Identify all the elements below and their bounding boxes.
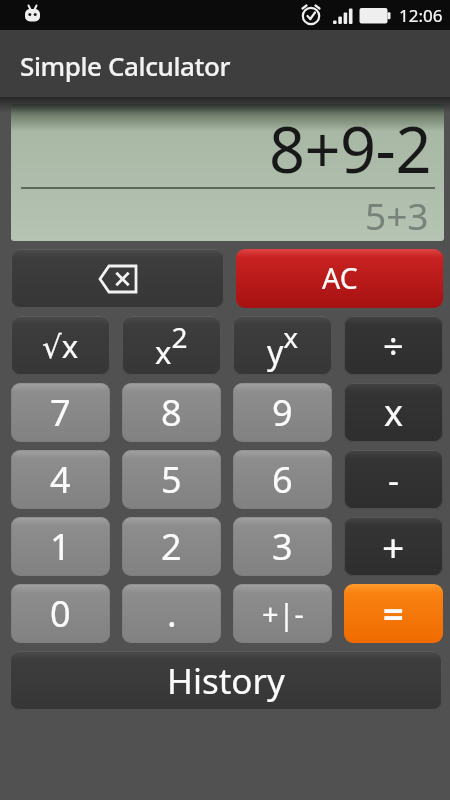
- staticText: yx: [267, 318, 299, 374]
- staticText: +: [382, 520, 405, 573]
- staticText: =: [383, 589, 404, 638]
- staticText: 8: [161, 388, 182, 437]
- button[interactable]: 5: [122, 450, 221, 509]
- button[interactable]: 1: [11, 517, 110, 576]
- staticText: 1: [50, 522, 71, 571]
- button[interactable]: History: [10, 651, 442, 710]
- button[interactable]: 2: [122, 517, 221, 576]
- staticText: 4: [50, 455, 71, 504]
- button[interactable]: 4: [11, 450, 110, 509]
- staticText: 5: [161, 455, 182, 504]
- button[interactable]: =: [344, 584, 443, 643]
- staticText: 6: [272, 455, 293, 504]
- staticText: Simple Calculator: [20, 48, 231, 83]
- button[interactable]: √x: [11, 316, 110, 375]
- staticText: ÷: [383, 321, 404, 370]
- button[interactable]: 8: [122, 383, 221, 442]
- staticText: √x: [42, 325, 79, 367]
- button[interactable]: 7: [11, 383, 110, 442]
- button[interactable]: ÷: [344, 316, 443, 375]
- staticText: 2: [161, 522, 182, 571]
- staticText: 12:06: [399, 4, 443, 27]
- staticText: AC: [322, 259, 358, 298]
- button[interactable]: -: [344, 450, 443, 509]
- staticText: -: [388, 457, 399, 503]
- button[interactable]: yx: [233, 316, 332, 375]
- button[interactable]: 9: [233, 383, 332, 442]
- button[interactable]: 3: [233, 517, 332, 576]
- staticText: 9: [272, 388, 293, 437]
- staticText: 0: [50, 589, 71, 638]
- button[interactable]: AC: [236, 249, 443, 308]
- staticText: 5+3: [365, 190, 429, 240]
- staticText: .: [167, 589, 177, 638]
- button[interactable]: [11, 249, 224, 308]
- button[interactable]: 0: [11, 584, 110, 643]
- button[interactable]: 6: [233, 450, 332, 509]
- button[interactable]: +|-: [233, 584, 332, 643]
- staticText: 7: [50, 388, 71, 437]
- button[interactable]: x: [344, 383, 443, 442]
- staticText: +|-: [262, 594, 304, 633]
- button[interactable]: .: [122, 584, 221, 643]
- staticText: 8+9-2: [269, 106, 431, 192]
- staticText: 3: [272, 522, 293, 571]
- staticText: History: [167, 657, 285, 705]
- button[interactable]: +: [344, 517, 443, 576]
- staticText: x2: [155, 318, 188, 373]
- staticText: x: [384, 388, 404, 437]
- button[interactable]: x2: [122, 316, 221, 375]
